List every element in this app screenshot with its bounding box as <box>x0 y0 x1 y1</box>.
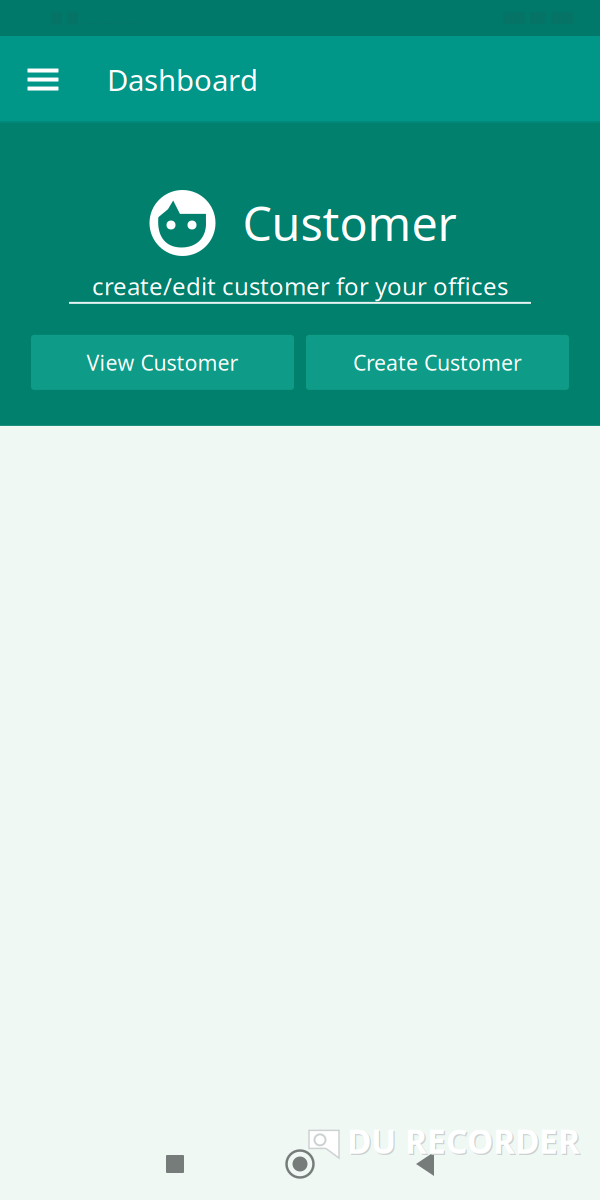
button[interactable]: Create Customer <box>306 335 569 390</box>
staticText: View Customer <box>86 348 238 376</box>
staticText: create/edit customer for your offices <box>92 270 508 302</box>
button[interactable]: Home <box>237 1136 362 1192</box>
button[interactable]: Menu <box>0 36 86 123</box>
staticText: Customer <box>242 192 456 254</box>
staticText: Create Customer <box>353 348 522 376</box>
staticText: DU RECORDER <box>348 1120 581 1164</box>
button[interactable]: View Customer <box>31 335 294 390</box>
staticText: DU RECORDER <box>347 1119 580 1163</box>
button[interactable]: Back <box>362 1136 487 1192</box>
button[interactable]: Recents <box>112 1136 237 1192</box>
staticText: Dashboard <box>107 60 258 99</box>
